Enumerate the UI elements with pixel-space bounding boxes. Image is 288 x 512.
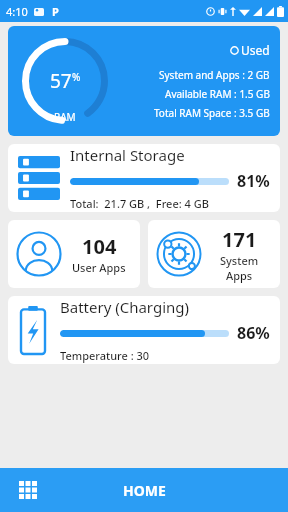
button[interactable]: 104 <box>8 220 140 288</box>
staticText: User Apps <box>72 260 126 275</box>
staticText: % <box>72 70 81 84</box>
button[interactable]: HOME <box>123 468 166 512</box>
staticText: Total: 21.7 GB , Free: 4 GB <box>70 196 209 211</box>
staticText: Internal Storage <box>70 145 185 165</box>
staticText: Total RAM Space : 3.5 GB <box>154 106 270 120</box>
staticText: P <box>52 4 59 19</box>
staticText: 104 <box>82 233 117 260</box>
button[interactable]: Battery (Charging) <box>8 296 280 364</box>
button[interactable]: Internal Storage <box>8 144 280 212</box>
staticText: 4:10 <box>6 4 28 19</box>
staticText: Apps <box>226 268 253 283</box>
button[interactable]: 57 <box>8 26 280 136</box>
staticText: HOME <box>123 481 166 500</box>
staticText: System and Apps : 2 GB <box>159 68 270 82</box>
staticText: Available RAM : 1.5 GB <box>165 87 270 101</box>
staticText: RAM <box>54 110 76 124</box>
staticText: 86% <box>237 322 270 344</box>
staticText: System <box>220 253 259 268</box>
staticText: Battery (Charging) <box>60 297 190 317</box>
staticText: Used <box>241 42 270 58</box>
staticText: 81% <box>237 170 270 192</box>
staticText: Temperature : 30 <box>60 348 150 363</box>
button[interactable]: 171 <box>148 220 280 288</box>
staticText: 171 <box>222 226 257 253</box>
staticText: 57 <box>50 68 72 94</box>
button[interactable]: Apps <box>0 468 56 512</box>
